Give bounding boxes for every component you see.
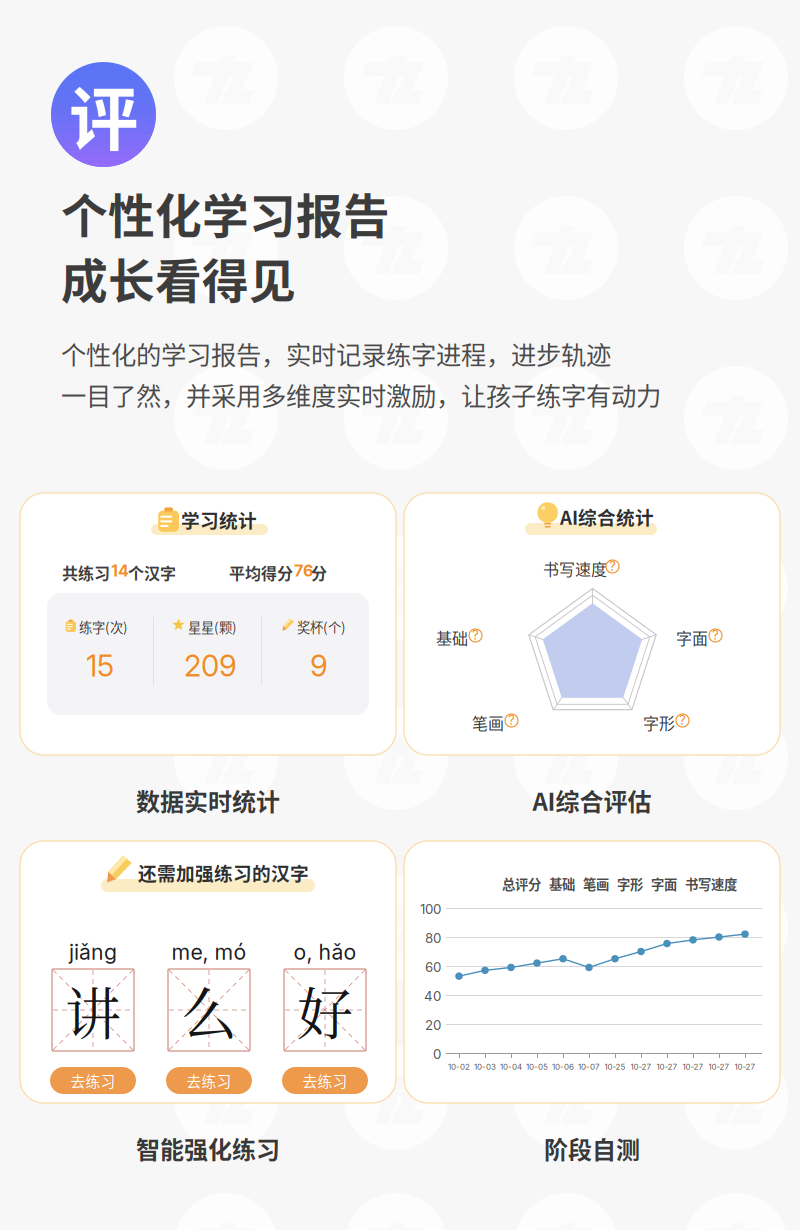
staticText: AI综合评估 (532, 783, 651, 818)
button[interactable]: 去练习 (50, 1067, 136, 1094)
staticText: 10-02 (448, 1062, 470, 1072)
staticText: ? (679, 712, 686, 728)
staticText: o, hǎo (293, 939, 356, 965)
staticText: 成长看得见 (61, 244, 296, 312)
staticText: AI综合统计 (560, 503, 654, 530)
staticText: ? (712, 627, 719, 643)
staticText: 基础 (436, 626, 468, 649)
staticText: 去练习 (302, 1070, 347, 1091)
staticText: 讲 (65, 970, 121, 1050)
staticText: 10-27 (656, 1062, 677, 1072)
staticText: 字面 (676, 626, 708, 649)
staticText: me, mó (171, 939, 246, 965)
staticText: 0 (433, 1046, 441, 1062)
staticText: 书写速度 (543, 557, 607, 580)
staticText: 10-03 (474, 1062, 496, 1072)
staticText: 好 (297, 970, 353, 1050)
staticText: 还需加强练习的汉字 (138, 859, 309, 886)
staticText: 209 (184, 648, 237, 683)
staticText: 60 (425, 959, 441, 975)
staticText: 个性化的学习报告，实时记录练字进程，进步轨迹 (61, 335, 611, 372)
staticText: 20 (425, 1017, 441, 1033)
staticText: 10-07 (578, 1062, 600, 1072)
staticText: 分 (311, 561, 327, 584)
staticText: 10-05 (526, 1062, 548, 1072)
staticText: 基础 (549, 874, 575, 893)
button[interactable]: 去练习 (166, 1067, 252, 1094)
staticText: 数据实时统计 (136, 783, 280, 818)
staticText: 个汉字 (128, 561, 176, 584)
staticText: 阶段自测 (544, 1131, 640, 1166)
staticText: 个性化学习报告 (61, 179, 390, 247)
staticText: 星星(颗) (188, 617, 237, 636)
staticText: 80 (425, 930, 441, 946)
staticText: 字形 (617, 874, 643, 893)
staticText: 奖杯(个) (297, 617, 346, 636)
staticText: 10-27 (630, 1062, 651, 1072)
button[interactable]: 去练习 (282, 1067, 368, 1094)
staticText: jiǎng (69, 939, 117, 965)
staticText: 字面 (651, 874, 677, 893)
staticText: 去练习 (186, 1070, 231, 1091)
staticText: 笔画 (583, 874, 609, 893)
staticText: 40 (424, 988, 441, 1004)
staticText: 14 (111, 561, 129, 580)
staticText: 10-27 (734, 1062, 755, 1072)
staticText: 么 (181, 970, 237, 1050)
staticText: 15 (86, 648, 114, 683)
staticText: 字形 (643, 711, 675, 734)
staticText: 10-25 (604, 1062, 625, 1072)
staticText: 智能强化练习 (136, 1131, 280, 1166)
staticText: 书写速度 (685, 874, 737, 893)
staticText: 10-04 (500, 1062, 522, 1072)
staticText: 一目了然，并采用多维度实时激励，让孩子练字有动力 (61, 376, 661, 413)
staticText: 平均得分 (229, 561, 293, 584)
staticText: 10-27 (708, 1062, 729, 1072)
staticText: ? (609, 558, 616, 574)
staticText: 76 (294, 561, 313, 580)
staticText: ? (472, 627, 479, 643)
staticText: 共练习 (62, 561, 110, 584)
staticText: 去练习 (70, 1070, 115, 1091)
staticText: 总评分 (502, 874, 541, 893)
staticText: 笔画 (472, 711, 504, 734)
staticText: 练字(次) (79, 617, 128, 636)
staticText: 10-27 (682, 1062, 703, 1072)
staticText: 9 (310, 648, 328, 683)
staticText: 学习统计 (181, 506, 257, 533)
staticText: ? (508, 712, 515, 728)
staticText: 100 (420, 901, 441, 917)
staticText: 评 (69, 64, 138, 165)
staticText: 10-06 (552, 1062, 574, 1072)
